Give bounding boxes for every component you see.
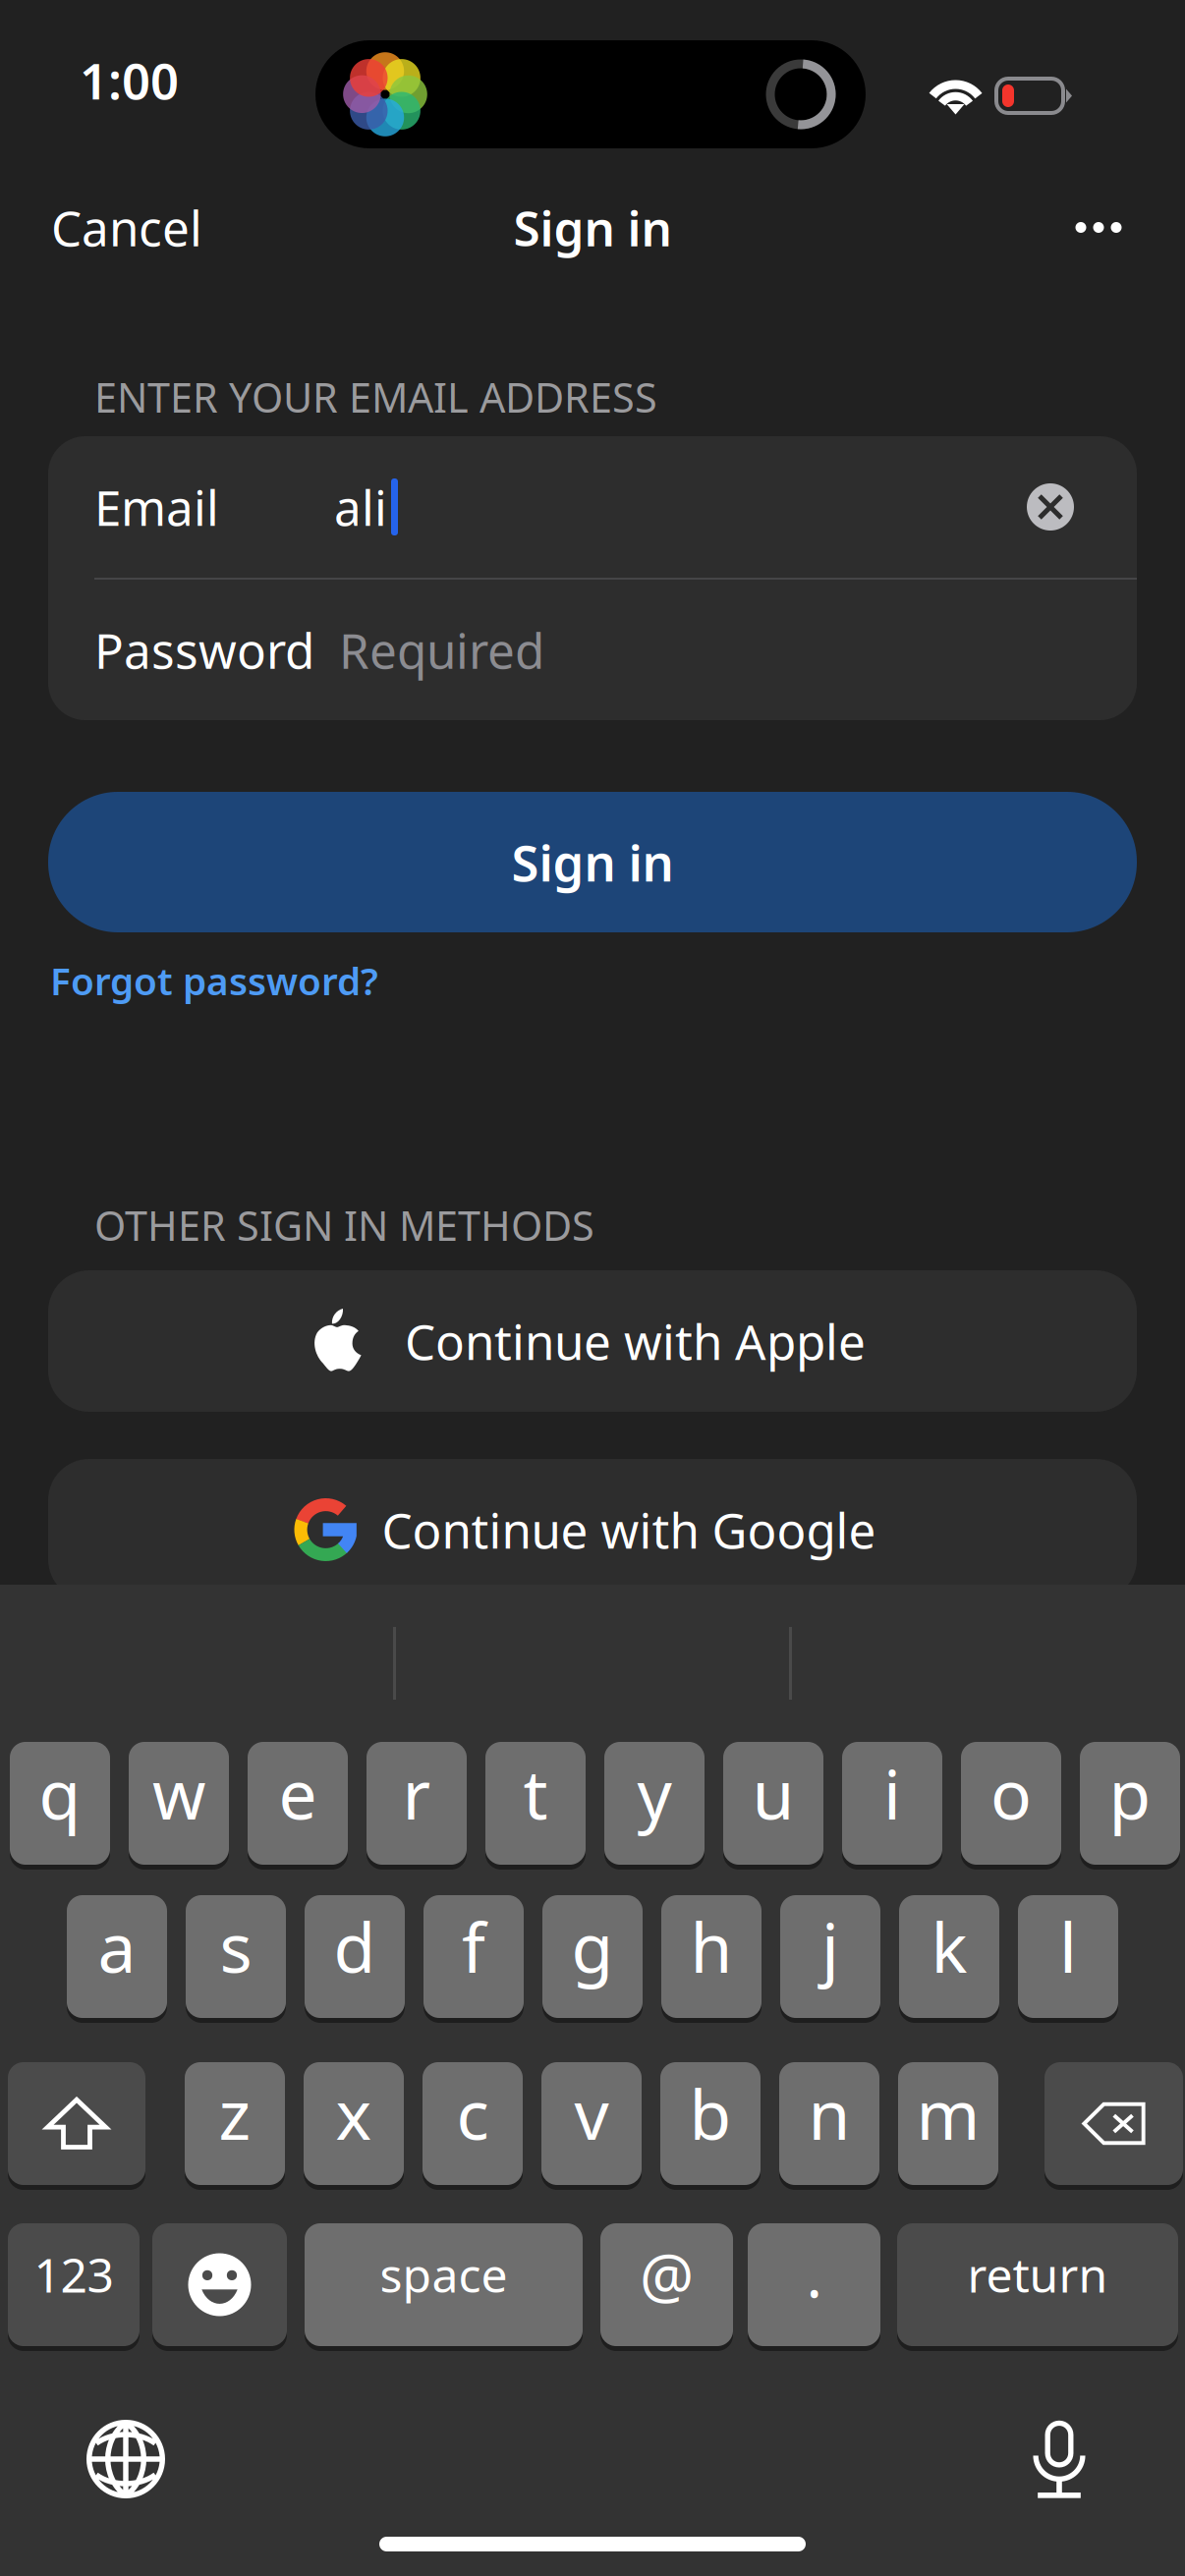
- button[interactable]: g: [542, 1895, 643, 2023]
- button[interactable]: Shift: [8, 2062, 145, 2190]
- button[interactable]: Forgot password?: [0, 951, 408, 1010]
- button[interactable]: Email: [48, 436, 1137, 578]
- button[interactable]: z: [185, 2062, 285, 2190]
- staticText: 123: [34, 2243, 113, 2306]
- staticText: i: [883, 1748, 901, 1838]
- staticText: 1:00: [80, 47, 179, 113]
- staticText: s: [220, 1901, 252, 1992]
- staticText: u: [752, 1748, 794, 1838]
- staticText: w: [152, 1748, 205, 1838]
- button[interactable]: More options: [1035, 152, 1185, 303]
- staticText: z: [219, 2068, 251, 2159]
- button[interactable]: .: [748, 2223, 880, 2351]
- button[interactable]: u: [723, 1742, 823, 1870]
- button[interactable]: c: [423, 2062, 523, 2190]
- staticText: q: [39, 1748, 81, 1838]
- staticText: Forgot password?: [50, 955, 378, 1006]
- button[interactable]: Continue with Google: [48, 1459, 1137, 1600]
- button[interactable]: Cancel: [0, 160, 244, 295]
- button[interactable]: j: [780, 1895, 880, 2023]
- button[interactable]: y: [604, 1742, 705, 1870]
- button[interactable]: return: [897, 2223, 1178, 2351]
- staticText: k: [931, 1901, 967, 1992]
- button[interactable]: e: [248, 1742, 348, 1870]
- button[interactable]: m: [898, 2062, 998, 2190]
- button[interactable]: @: [600, 2223, 733, 2351]
- button[interactable]: q: [10, 1742, 110, 1870]
- staticText: Password: [94, 618, 314, 682]
- staticText: n: [808, 2068, 850, 2159]
- button[interactable]: p: [1080, 1742, 1180, 1870]
- button[interactable]: v: [541, 2062, 642, 2190]
- staticText: l: [1059, 1901, 1077, 1992]
- staticText: g: [571, 1901, 614, 1992]
- button[interactable]: r: [367, 1742, 467, 1870]
- staticText: Cancel: [51, 195, 202, 260]
- button[interactable]: Sign in: [48, 792, 1137, 932]
- staticText: o: [990, 1748, 1032, 1838]
- staticText: y: [637, 1748, 672, 1838]
- staticText: p: [1109, 1748, 1151, 1838]
- button[interactable]: a: [67, 1895, 167, 2023]
- button[interactable]: Continue with Apple: [48, 1270, 1137, 1412]
- staticText: Sign in: [513, 195, 672, 260]
- staticText: b: [689, 2068, 732, 2159]
- button[interactable]: Emoji: [152, 2223, 287, 2351]
- staticText: space: [380, 2243, 508, 2306]
- button[interactable]: f: [423, 1895, 524, 2023]
- button[interactable]: space: [305, 2223, 583, 2351]
- staticText: t: [523, 1748, 548, 1838]
- staticText: c: [456, 2068, 489, 2159]
- button[interactable]: w: [129, 1742, 229, 1870]
- button[interactable]: Delete: [1044, 2062, 1183, 2190]
- button[interactable]: Next keyboard: [62, 2395, 190, 2523]
- button[interactable]: x: [304, 2062, 404, 2190]
- staticText: r: [402, 1748, 431, 1838]
- button[interactable]: Password: [48, 580, 1137, 720]
- staticText: Continue with Google: [382, 1497, 876, 1562]
- staticText: j: [821, 1901, 839, 1992]
- staticText: Sign in: [511, 829, 674, 895]
- button[interactable]: i: [842, 1742, 942, 1870]
- staticText: .: [806, 2234, 822, 2314]
- staticText: e: [279, 1748, 317, 1838]
- staticText: Required: [339, 618, 544, 682]
- staticText: OTHER SIGN IN METHODS: [94, 1198, 594, 1252]
- button[interactable]: Dictation: [995, 2395, 1123, 2523]
- staticText: f: [462, 1901, 485, 1992]
- button[interactable]: n: [779, 2062, 879, 2190]
- staticText: x: [336, 2068, 372, 2159]
- staticText: Continue with Apple: [405, 1309, 866, 1373]
- staticText: h: [690, 1901, 733, 1992]
- staticText: v: [574, 2068, 609, 2159]
- staticText: d: [334, 1901, 376, 1992]
- button[interactable]: t: [485, 1742, 586, 1870]
- button[interactable]: 123: [8, 2223, 140, 2351]
- staticText: ali: [334, 475, 387, 539]
- button[interactable]: o: [961, 1742, 1061, 1870]
- staticText: m: [916, 2068, 980, 2159]
- staticText: a: [98, 1901, 136, 1992]
- staticText: @: [640, 2234, 694, 2314]
- button[interactable]: b: [660, 2062, 761, 2190]
- staticText: ENTER YOUR EMAIL ADDRESS: [94, 370, 657, 424]
- button[interactable]: h: [661, 1895, 762, 2023]
- button[interactable]: s: [186, 1895, 286, 2023]
- staticText: return: [967, 2243, 1108, 2306]
- button[interactable]: l: [1018, 1895, 1118, 2023]
- button[interactable]: d: [305, 1895, 405, 2023]
- button[interactable]: k: [899, 1895, 999, 2023]
- staticText: Email: [94, 475, 219, 539]
